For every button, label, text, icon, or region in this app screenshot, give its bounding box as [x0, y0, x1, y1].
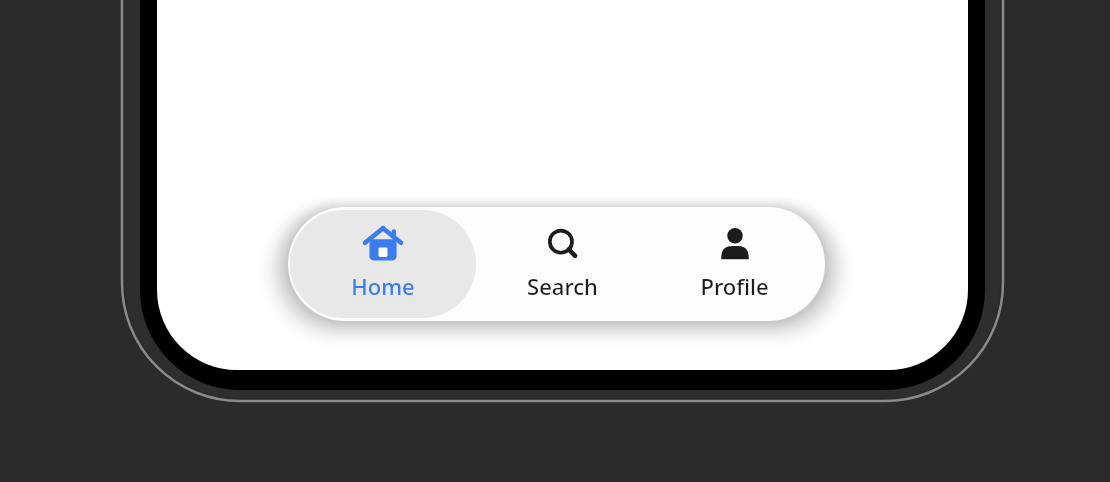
other: Profile [712, 224, 758, 266]
button[interactable]: Home [290, 210, 476, 318]
staticText: Profile [700, 271, 769, 301]
staticText: Search [527, 271, 598, 301]
button[interactable]: Search [476, 207, 648, 321]
other: Search [540, 224, 586, 266]
other: Home [360, 224, 406, 266]
button[interactable]: Profile [648, 207, 820, 321]
staticText: Home [351, 271, 415, 301]
